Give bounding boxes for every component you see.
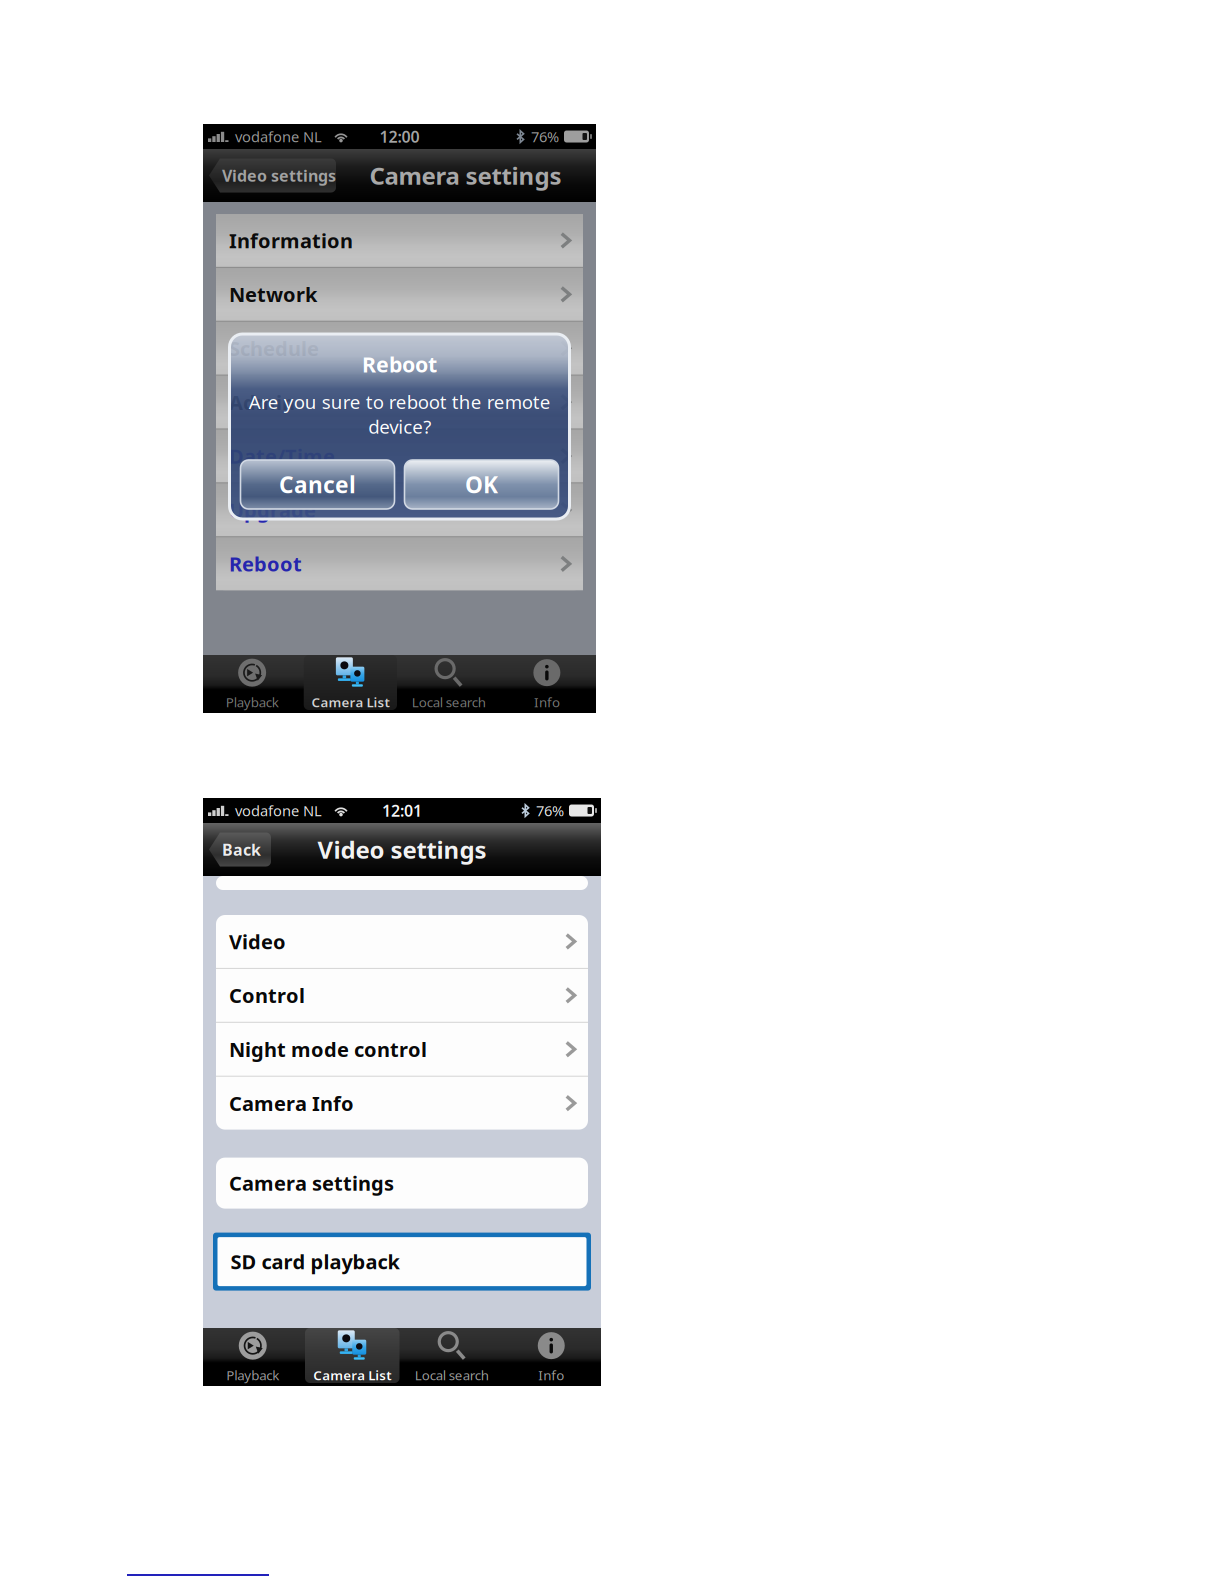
staticText: Info bbox=[534, 693, 560, 711]
staticText: Information bbox=[229, 227, 353, 254]
button[interactable]: Upgrade bbox=[216, 483, 583, 536]
button[interactable]: Back bbox=[209, 832, 271, 866]
staticText: Local search bbox=[412, 693, 486, 711]
button[interactable]: Cancel bbox=[240, 460, 394, 509]
button[interactable]: Local search bbox=[399, 655, 498, 713]
staticText: 12:00 bbox=[379, 126, 419, 147]
staticText: Back bbox=[222, 839, 261, 860]
staticText: Video bbox=[229, 928, 286, 955]
staticText: Info bbox=[538, 1366, 564, 1384]
staticText: 76% bbox=[531, 127, 559, 146]
button[interactable]: Night mode control bbox=[216, 1023, 588, 1076]
staticText: Cancel bbox=[279, 469, 356, 499]
button[interactable]: Reboot bbox=[216, 537, 583, 590]
button[interactable]: Video settings bbox=[209, 158, 336, 192]
button[interactable]: Camera List bbox=[302, 1328, 402, 1386]
button[interactable]: Playback bbox=[203, 655, 301, 713]
button[interactable]: Camera List bbox=[301, 655, 399, 713]
button[interactable]: Admin bbox=[216, 376, 583, 429]
button[interactable]: OK bbox=[404, 460, 558, 509]
button[interactable]: Schedule bbox=[216, 322, 583, 375]
button[interactable]: Video bbox=[216, 915, 588, 968]
staticText: vodafone NL bbox=[231, 801, 322, 820]
staticText: Video settings bbox=[317, 834, 486, 865]
staticText: SD card playback bbox=[230, 1248, 399, 1275]
staticText: 12:01 bbox=[382, 800, 422, 821]
staticText: Camera List bbox=[313, 1366, 391, 1384]
staticText: Network bbox=[229, 281, 317, 308]
staticText: Date/Time bbox=[229, 443, 335, 469]
button[interactable]: Network bbox=[216, 268, 583, 321]
staticText: 76% bbox=[536, 801, 564, 820]
button[interactable]: Camera Info bbox=[216, 1077, 588, 1130]
staticText: Upgrade bbox=[229, 497, 316, 523]
staticText: Schedule bbox=[229, 335, 319, 362]
staticText: Control bbox=[229, 982, 305, 1009]
staticText: OK bbox=[465, 469, 498, 499]
staticText: vodafone NL bbox=[231, 127, 322, 146]
button[interactable]: Info bbox=[501, 1328, 601, 1386]
staticText: Are you sure to reboot the remote device… bbox=[248, 389, 550, 439]
button[interactable]: Info bbox=[498, 655, 596, 713]
button[interactable]: SD card playback bbox=[217, 1237, 586, 1286]
button[interactable]: Local search bbox=[402, 1328, 501, 1386]
staticText: Reboot bbox=[229, 551, 302, 577]
staticText: Camera List bbox=[311, 693, 389, 711]
staticText: Local search bbox=[415, 1366, 489, 1384]
button[interactable]: Control bbox=[216, 969, 588, 1022]
staticText: Admin bbox=[229, 389, 295, 415]
button[interactable]: Camera settings bbox=[216, 1158, 588, 1209]
button[interactable]: Date/Time bbox=[216, 430, 583, 482]
staticText: Camera settings bbox=[369, 160, 561, 191]
staticText: Video settings bbox=[222, 165, 336, 186]
staticText: Playback bbox=[226, 693, 279, 711]
staticText: Camera settings bbox=[229, 1170, 394, 1196]
button[interactable]: Playback bbox=[203, 1328, 302, 1386]
staticText: Night mode control bbox=[229, 1036, 427, 1063]
button[interactable]: Information bbox=[216, 214, 583, 267]
staticText: Playback bbox=[226, 1366, 279, 1384]
staticText: Reboot bbox=[362, 350, 437, 378]
staticText: Camera Info bbox=[229, 1090, 354, 1116]
